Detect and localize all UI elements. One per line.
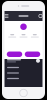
button[interactable]: Search	[36, 12, 44, 20]
button[interactable]: Follow	[7, 51, 22, 57]
button[interactable]: Message	[25, 51, 40, 57]
button[interactable]: Menu	[2, 12, 10, 20]
